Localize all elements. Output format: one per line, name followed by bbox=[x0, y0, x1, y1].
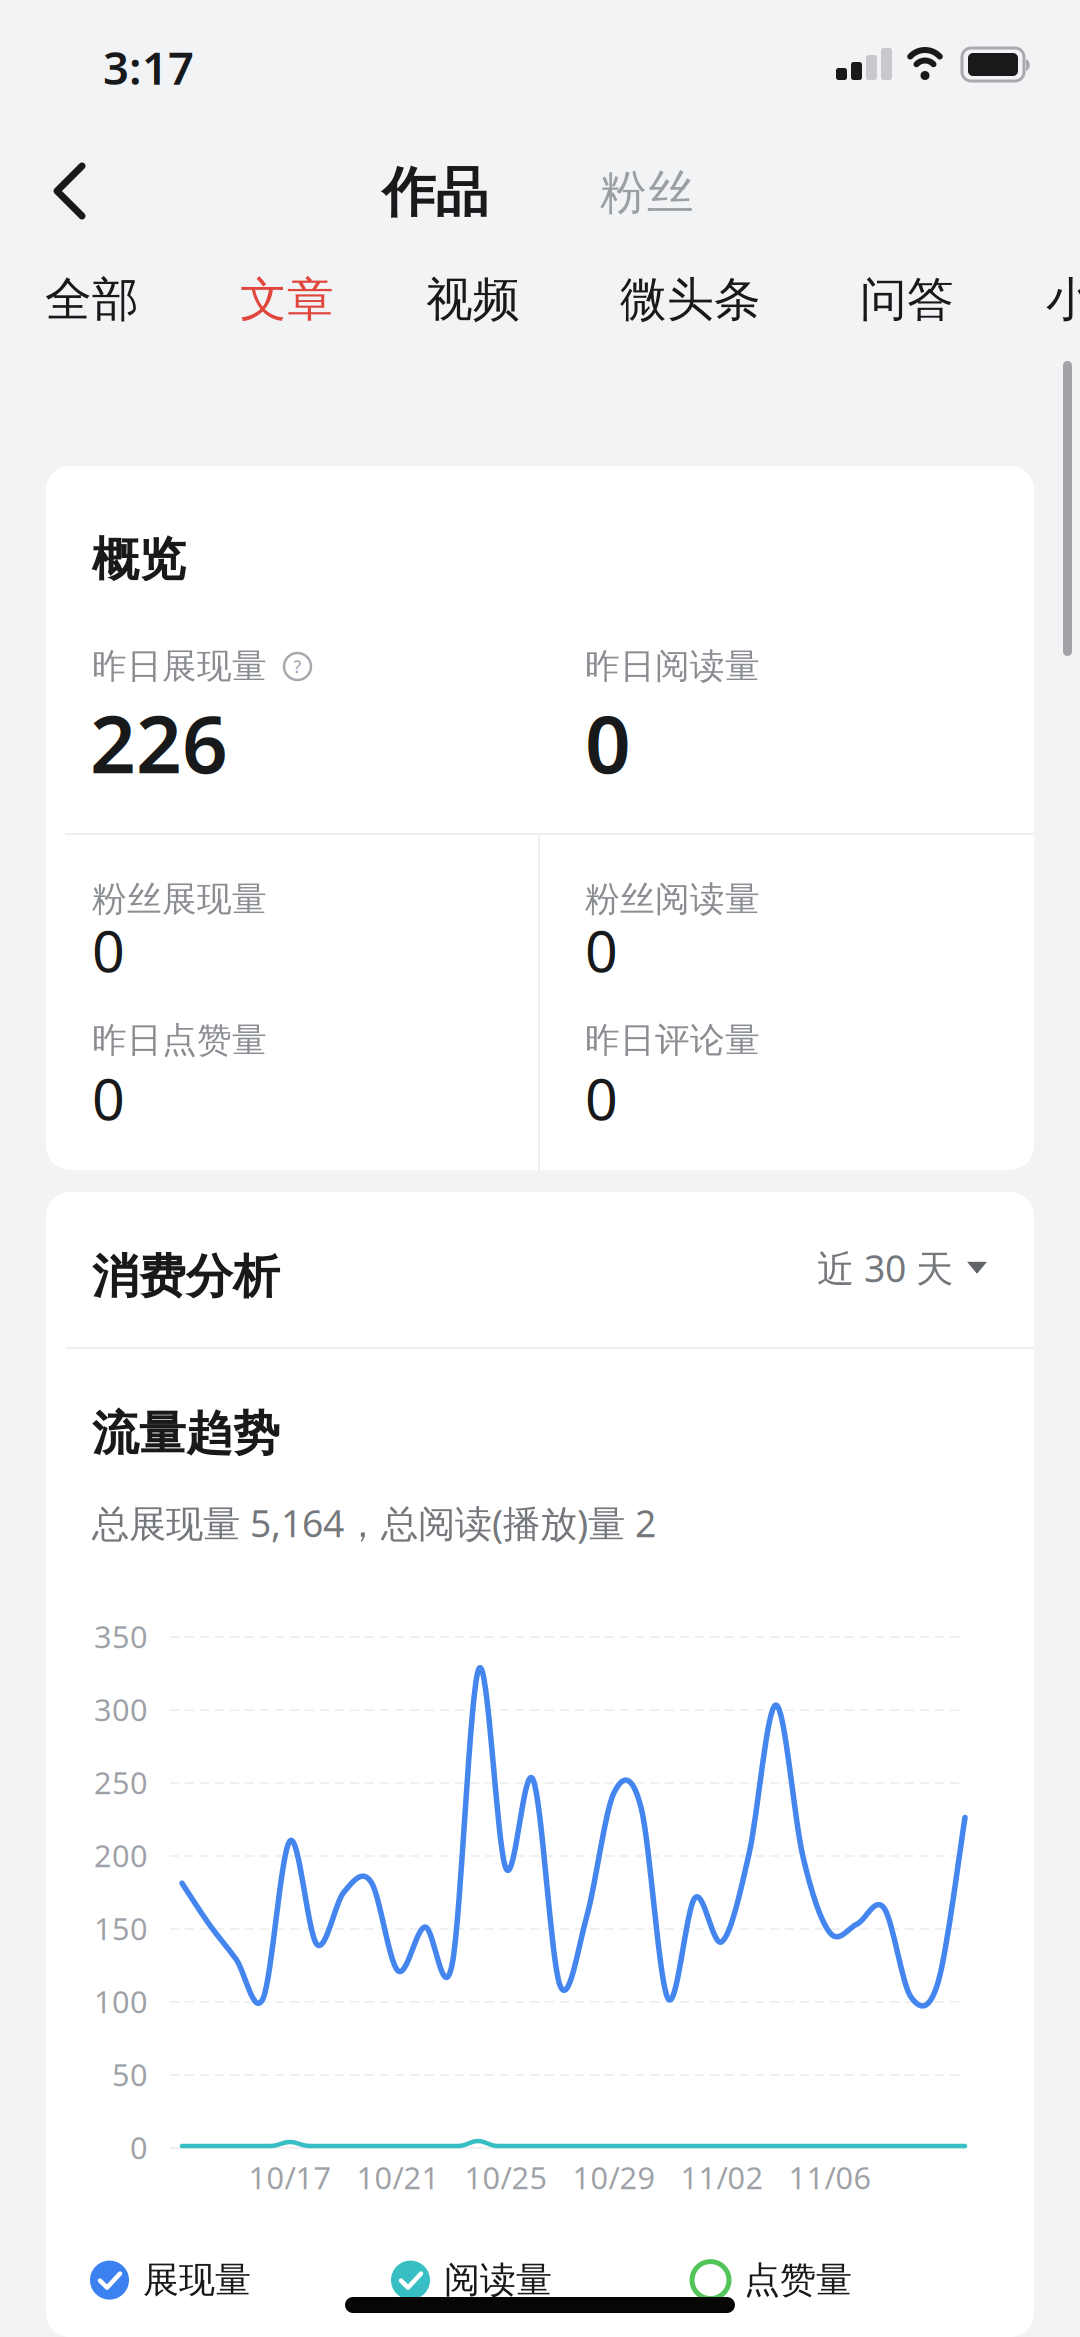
staticText: 10/17 bbox=[248, 2157, 331, 2198]
staticText: 昨日评论量 bbox=[585, 1019, 760, 1062]
staticText: 300 bbox=[94, 1689, 148, 1730]
staticText: 昨日点赞量 bbox=[92, 1019, 267, 1062]
staticText: 350 bbox=[94, 1616, 148, 1657]
staticText: 概览 bbox=[92, 531, 186, 588]
button[interactable]: 文章 bbox=[240, 271, 334, 328]
staticText: 3:17 bbox=[103, 37, 194, 97]
staticText: 总展现量 5,164，总阅读(播放)量 2 bbox=[92, 1498, 656, 1548]
staticText: 流量趋势 bbox=[92, 1405, 280, 1462]
button[interactable]: 作品 bbox=[382, 160, 488, 225]
staticText: 10/29 bbox=[572, 2157, 655, 2198]
button[interactable]: 全部 bbox=[45, 271, 139, 328]
staticText: 微头条 bbox=[620, 271, 761, 328]
staticText: 文章 bbox=[240, 271, 334, 328]
staticText: 0 bbox=[585, 912, 618, 988]
button[interactable]: 粉丝 bbox=[600, 164, 694, 221]
staticText: 作品 bbox=[382, 160, 488, 225]
button[interactable]: 点赞量 bbox=[691, 2258, 852, 2302]
staticText: 10/25 bbox=[464, 2157, 547, 2198]
staticText: 展现量 bbox=[143, 2258, 251, 2302]
staticText: 10/21 bbox=[356, 2157, 439, 2198]
staticText: 50 bbox=[112, 2054, 148, 2095]
staticText: 0 bbox=[585, 689, 631, 795]
staticText: 全部 bbox=[45, 271, 139, 328]
button[interactable]: 问答 bbox=[860, 271, 954, 328]
button[interactable]: 阅读量 bbox=[391, 2258, 552, 2302]
staticText: 视频 bbox=[426, 271, 520, 328]
staticText: 昨日阅读量 bbox=[585, 645, 760, 688]
staticText: 小视频 bbox=[1046, 271, 1080, 328]
staticText: 150 bbox=[94, 1908, 148, 1949]
button[interactable]: 微头条 bbox=[620, 271, 761, 328]
staticText: 0 bbox=[92, 912, 125, 988]
staticText: 0 bbox=[130, 2127, 148, 2168]
button[interactable]: 小视频 bbox=[1046, 271, 1080, 328]
button[interactable]: 近 30 天 bbox=[817, 1243, 987, 1293]
button[interactable]: 视频 bbox=[426, 271, 520, 328]
staticText: ? bbox=[293, 655, 301, 678]
staticText: 粉丝阅读量 bbox=[585, 878, 760, 921]
staticText: 226 bbox=[90, 689, 228, 795]
staticText: 200 bbox=[94, 1835, 148, 1876]
staticText: 粉丝展现量 bbox=[92, 878, 267, 921]
staticText: 阅读量 bbox=[444, 2258, 552, 2302]
staticText: 100 bbox=[94, 1981, 148, 2022]
staticText: 昨日展现量 bbox=[92, 645, 267, 688]
staticText: 11/06 bbox=[788, 2157, 871, 2198]
button[interactable]: Back bbox=[34, 154, 104, 228]
staticText: 0 bbox=[585, 1060, 618, 1136]
staticText: 0 bbox=[92, 1060, 125, 1136]
staticText: 近 30 天 bbox=[817, 1243, 953, 1293]
button[interactable]: 展现量 bbox=[90, 2258, 251, 2302]
staticText: 问答 bbox=[860, 271, 954, 328]
staticText: 11/02 bbox=[680, 2157, 763, 2198]
staticText: 粉丝 bbox=[600, 164, 694, 221]
staticText: 点赞量 bbox=[744, 2258, 852, 2302]
staticText: 消费分析 bbox=[92, 1248, 280, 1305]
staticText: 250 bbox=[94, 1762, 148, 1803]
